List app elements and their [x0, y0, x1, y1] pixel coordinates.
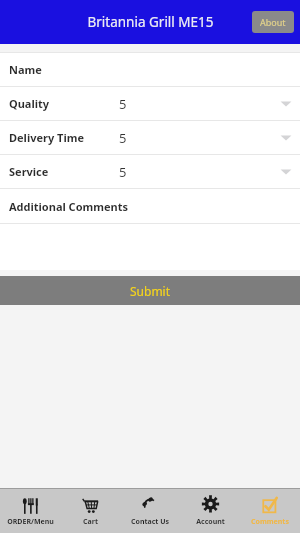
staticText: 5 — [119, 129, 127, 147]
staticText: 5 — [119, 163, 127, 181]
staticText: Cart — [83, 517, 98, 527]
staticText: Contact Us — [131, 517, 169, 527]
button[interactable]: Additional Comments — [0, 189, 300, 223]
staticText: Additional Comments — [9, 199, 129, 214]
staticText: Submit — [130, 283, 171, 299]
button[interactable]: ORDER/Menu — [0, 489, 60, 533]
button[interactable]: Cart — [60, 489, 120, 533]
staticText: ORDER/Menu — [7, 517, 54, 527]
button[interactable]: Account — [180, 489, 240, 533]
staticText: Account — [196, 517, 225, 527]
staticText: Britannia Grill ME15 — [87, 13, 214, 31]
staticText: Comments — [251, 517, 289, 527]
staticText: Service — [9, 164, 49, 179]
button[interactable]: Service — [0, 155, 300, 188]
staticText: About — [260, 16, 286, 28]
button[interactable]: Comments — [240, 489, 300, 533]
staticText: Name — [9, 62, 42, 77]
button[interactable]: Submit — [0, 276, 300, 305]
button[interactable]: Delivery Time — [0, 121, 300, 154]
staticText: Quality — [9, 96, 50, 111]
button[interactable]: Name — [0, 53, 300, 86]
button[interactable]: Quality — [0, 87, 300, 120]
button[interactable]: Contact Us — [120, 489, 180, 533]
button[interactable]: About — [252, 11, 294, 33]
staticText: Delivery Time — [9, 130, 85, 145]
staticText: 5 — [119, 95, 127, 113]
